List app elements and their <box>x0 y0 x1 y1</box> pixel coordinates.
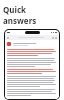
staticText: answers <box>3 15 37 26</box>
button[interactable]: App icon <box>7 42 11 46</box>
button[interactable]: Back <box>5 30 59 99</box>
staticText: Quick <box>3 4 27 15</box>
